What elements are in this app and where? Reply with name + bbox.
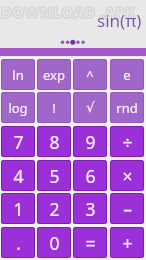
button[interactable]: ln [1, 59, 35, 90]
button[interactable]: 7 [1, 126, 35, 157]
staticText: 0 [49, 231, 60, 255]
staticText: – [123, 197, 132, 221]
button[interactable]: 6 [73, 160, 107, 191]
button[interactable]: 5 [37, 160, 71, 191]
button[interactable]: e [110, 59, 144, 90]
staticText: 4 [13, 164, 24, 188]
staticText: ^ [86, 66, 94, 84]
staticText: 2 [49, 197, 60, 221]
staticText: rnd [116, 99, 138, 117]
button[interactable]: – [110, 193, 144, 224]
button[interactable]: 0 [37, 227, 71, 258]
button[interactable]: × [110, 160, 144, 191]
staticText: √ [86, 100, 95, 115]
staticText: . [16, 231, 21, 255]
button[interactable]: √ [73, 92, 107, 123]
staticText: × [122, 164, 133, 188]
button[interactable]: ! [37, 92, 71, 123]
staticText: = [85, 231, 96, 255]
button[interactable]: . [1, 227, 35, 258]
button[interactable]: 1 [1, 193, 35, 224]
button[interactable]: exp [37, 59, 71, 90]
button[interactable]: ÷ [110, 126, 144, 157]
staticText: 6 [85, 164, 96, 188]
button[interactable]: 4 [1, 160, 35, 191]
button[interactable]: 9 [73, 126, 107, 157]
staticText: sin(π) [97, 9, 142, 32]
staticText: exp [43, 66, 65, 84]
button[interactable]: 8 [37, 126, 71, 157]
button[interactable]: log [1, 92, 35, 123]
staticText: log [8, 99, 28, 117]
staticText: + [122, 231, 133, 255]
staticText: 3 [85, 197, 96, 221]
staticText: 7 [13, 130, 24, 154]
staticText: 9 [85, 130, 96, 154]
button[interactable]: + [110, 227, 144, 258]
button[interactable]: = [73, 227, 107, 258]
staticText: 8 [49, 130, 60, 154]
button[interactable]: ^ [73, 59, 107, 90]
button[interactable]: rnd [110, 92, 144, 123]
button[interactable]: 3 [73, 193, 107, 224]
staticText: 1 [13, 197, 24, 221]
staticText: ln [12, 66, 24, 84]
staticText: ÷ [122, 130, 133, 154]
staticText: 5 [49, 164, 60, 188]
button[interactable]: 2 [37, 193, 71, 224]
staticText: e [123, 66, 131, 84]
staticText: DOWNLOAD .APK [1, 2, 136, 20]
staticText: ! [52, 99, 56, 117]
